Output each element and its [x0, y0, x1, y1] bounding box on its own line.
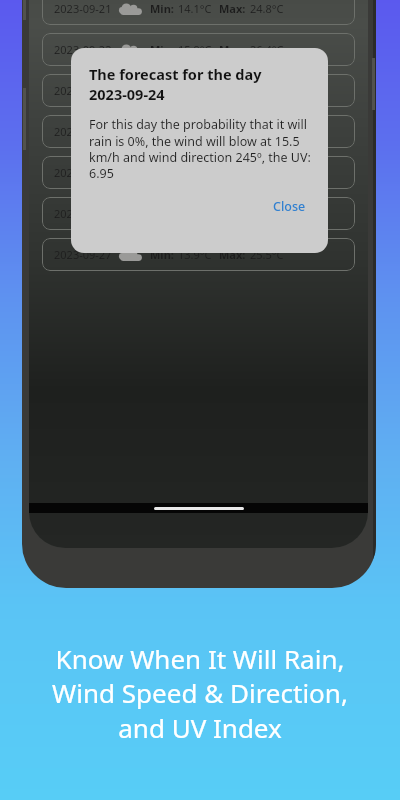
staticText: 15.9°C: [178, 42, 212, 57]
button[interactable]: Close: [267, 195, 312, 218]
staticText: 26.2°C: [250, 206, 284, 221]
staticText: Min:: [150, 42, 174, 57]
staticText: 2023-09-27: [54, 247, 112, 262]
staticText: Min:: [150, 124, 174, 139]
staticText: 16.2°C: [178, 124, 212, 139]
staticText: Max:: [219, 1, 246, 16]
staticText: 2023-09-24: [89, 84, 165, 104]
staticText: Max:: [219, 124, 246, 139]
button[interactable]: 2023-09-26: [42, 197, 355, 230]
button[interactable]: 2023-09-23: [42, 74, 355, 107]
button[interactable]: 2023-09-25: [42, 156, 355, 189]
staticText: 2023-09-23: [54, 83, 112, 98]
staticText: 2023-09-22: [54, 42, 112, 57]
staticText: 2023-09-24: [54, 124, 112, 139]
staticText: 2023-09-25: [54, 165, 112, 180]
staticText: The forecast for the day: [89, 64, 262, 84]
staticText: Max:: [219, 247, 246, 262]
button[interactable]: 2023-09-22: [42, 33, 355, 66]
staticText: Min:: [150, 1, 174, 16]
button[interactable]: 2023-09-21: [42, 0, 355, 25]
button[interactable]: 2023-09-27: [42, 238, 355, 271]
staticText: 2023-09-21: [54, 1, 112, 16]
staticText: 28.1°C: [250, 124, 284, 139]
staticText: For this day the probability that it wil…: [89, 116, 312, 181]
button[interactable]: 2023-09-24: [42, 115, 355, 148]
staticText: Min:: [150, 247, 174, 262]
staticText: 13.9°C: [178, 247, 212, 262]
staticText: 26.4°C: [250, 42, 284, 57]
staticText: Close: [273, 198, 306, 215]
staticText: 25.5°C: [250, 247, 284, 262]
staticText: 14.1°C: [178, 1, 212, 16]
staticText: Know When It Will Rain, Wind Speed & Dir…: [52, 641, 348, 746]
staticText: Max:: [219, 42, 246, 57]
staticText: Min:: [150, 83, 174, 98]
staticText: 2023-09-26: [54, 206, 112, 221]
staticText: 24.8°C: [250, 1, 284, 16]
